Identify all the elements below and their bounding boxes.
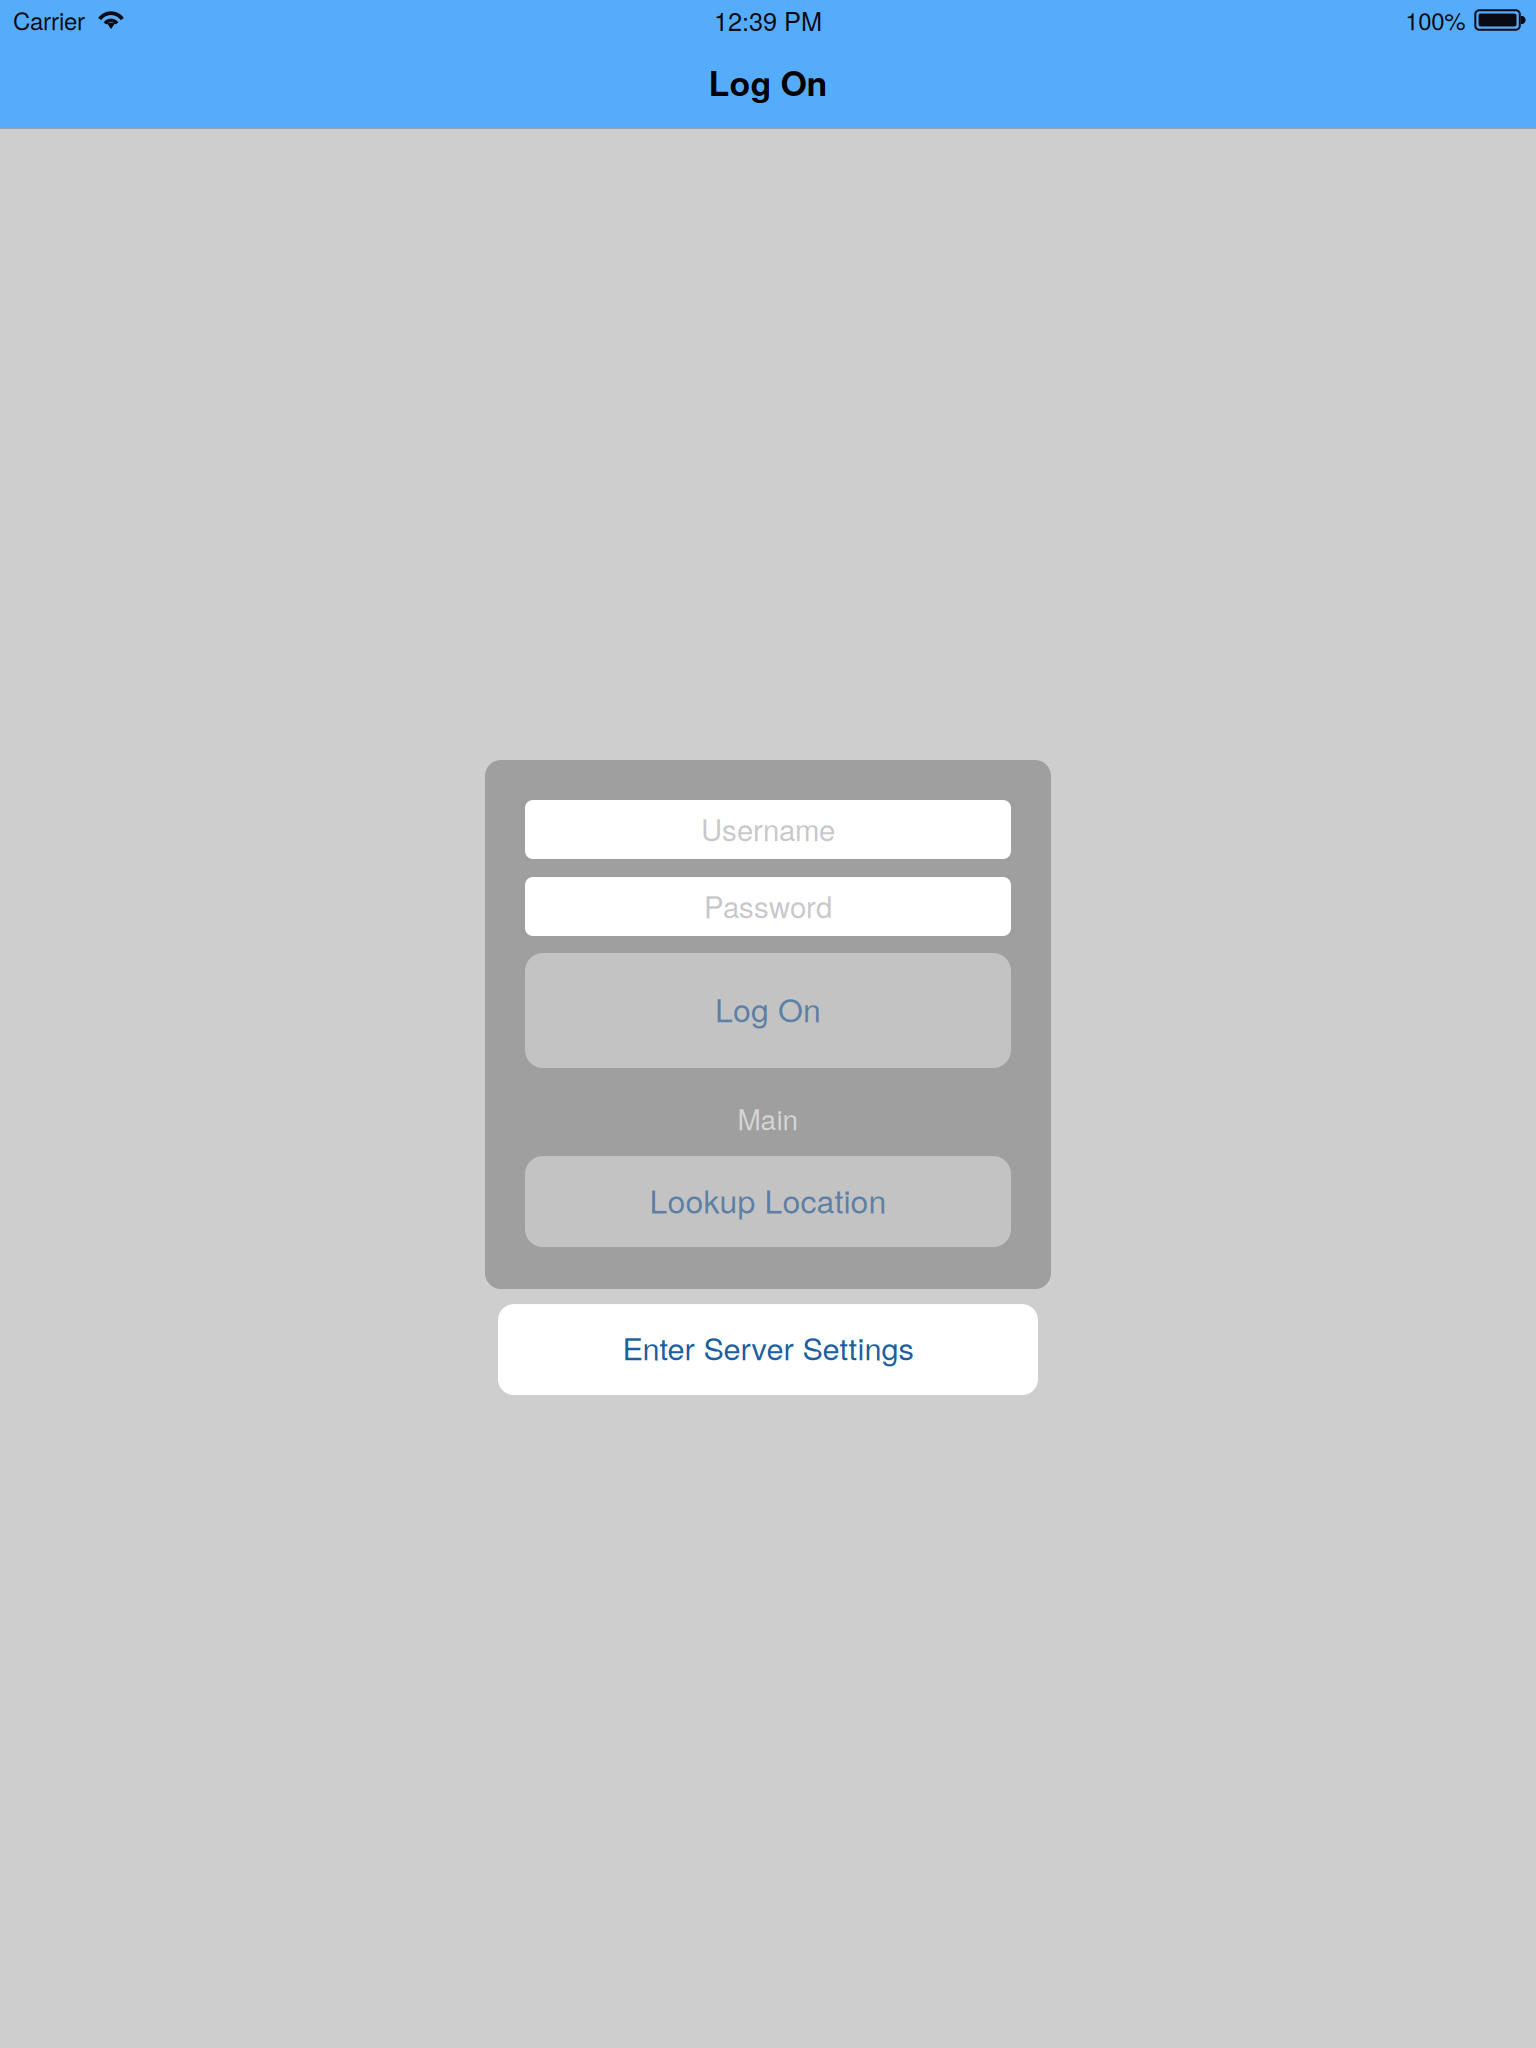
staticText: Lookup Location (649, 1177, 886, 1222)
button[interactable]: Enter Server Settings (498, 1304, 1038, 1395)
staticText: Password (704, 884, 832, 926)
button[interactable]: Password (525, 877, 1011, 936)
staticText: Carrier (13, 3, 85, 37)
staticText: Log On (715, 986, 821, 1031)
staticText: Username (701, 807, 835, 849)
staticText: 12:39 PM (714, 2, 822, 38)
button[interactable]: Log On (525, 953, 1011, 1068)
staticText: Log On (708, 58, 827, 106)
button[interactable]: Username (525, 800, 1011, 859)
staticText: 100% (1405, 3, 1465, 37)
staticText: Main (737, 1098, 798, 1138)
button[interactable]: Lookup Location (525, 1156, 1011, 1247)
staticText: Enter Server Settings (622, 1325, 913, 1369)
